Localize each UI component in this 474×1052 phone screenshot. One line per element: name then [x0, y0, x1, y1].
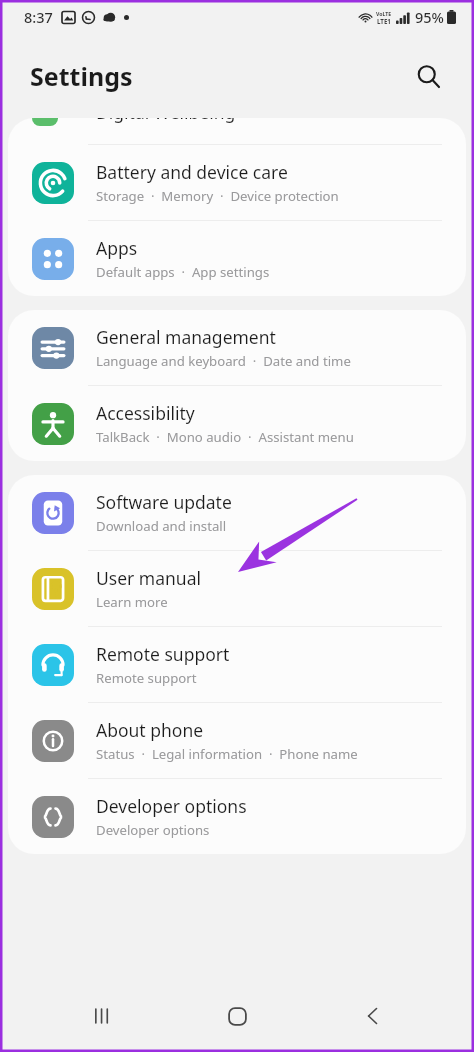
button[interactable]: About phone	[8, 703, 466, 779]
staticText: User manual	[96, 566, 201, 590]
button[interactable]: Accessibility	[8, 386, 466, 461]
button[interactable]: User manual	[8, 551, 466, 627]
button[interactable]: Back	[339, 982, 407, 1050]
staticText: Language and keyboard · Date and time	[96, 352, 351, 370]
button[interactable]: General management	[8, 310, 466, 386]
staticText: Developer options	[96, 821, 210, 839]
button[interactable]: Search	[404, 52, 452, 100]
staticText: Download and install	[96, 517, 227, 535]
button[interactable]: Home	[203, 982, 271, 1050]
staticText: About phone	[96, 718, 204, 742]
button[interactable]: Digital Wellbeing	[8, 118, 466, 144]
staticText: Learn more	[96, 593, 168, 611]
staticText: Remote support	[96, 642, 230, 666]
staticText: Remote support	[96, 669, 197, 687]
staticText: Apps	[96, 236, 138, 260]
staticText: Accessibility	[96, 401, 195, 425]
staticText: Developer options	[96, 794, 247, 818]
staticText: LTE1	[377, 17, 391, 25]
staticText: General management	[96, 325, 276, 349]
staticText: TalkBack · Mono audio · Assistant menu	[96, 428, 354, 446]
button[interactable]: Software update	[8, 475, 466, 551]
staticText: 95%	[415, 7, 444, 27]
staticText: Storage · Memory · Device protection	[96, 187, 339, 205]
staticText: VoLTE	[376, 10, 392, 17]
staticText: Battery and device care	[96, 160, 288, 184]
staticText: Default apps · App settings	[96, 263, 270, 281]
button[interactable]: Developer options	[8, 779, 466, 854]
button[interactable]: Apps	[8, 221, 466, 296]
staticText: Software update	[96, 490, 232, 514]
button[interactable]: Recent apps	[68, 982, 136, 1050]
staticText: Settings	[30, 59, 133, 93]
button[interactable]: Remote support	[8, 627, 466, 703]
staticText: Digital Wellbeing	[96, 118, 236, 124]
staticText: Status · Legal information · Phone name	[96, 745, 358, 763]
staticText: 8:37	[24, 7, 53, 27]
button[interactable]: Battery and device care	[8, 145, 466, 221]
